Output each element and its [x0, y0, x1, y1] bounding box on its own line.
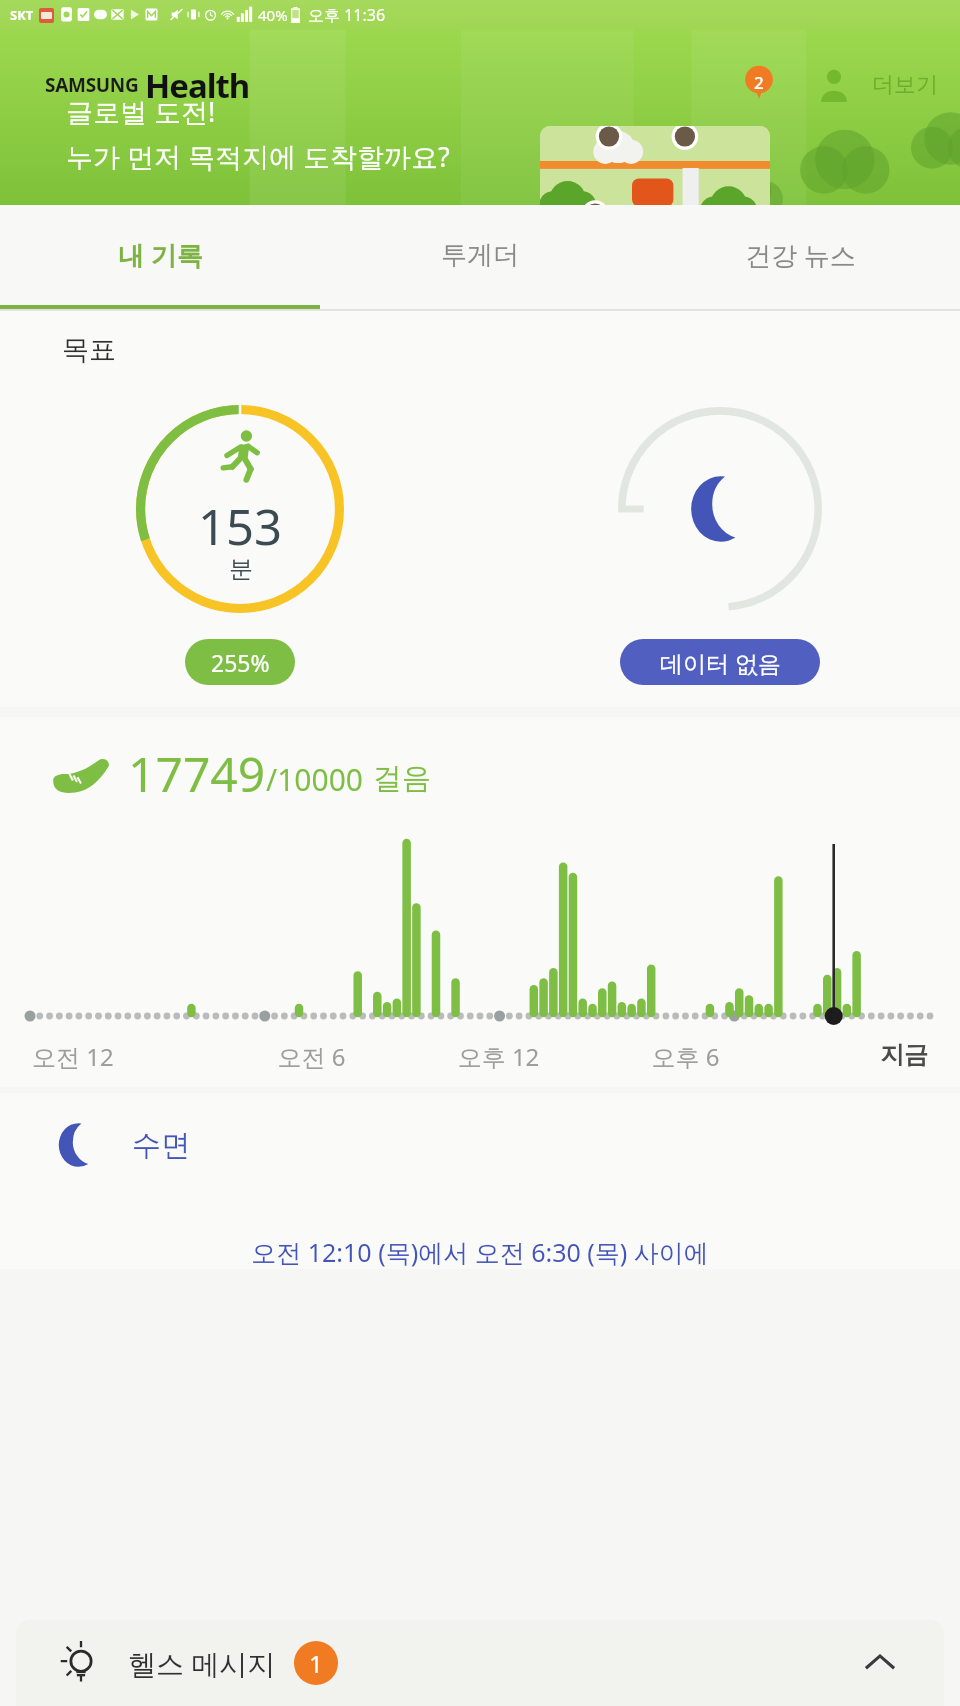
staticText: 헬스 메시지	[128, 1644, 276, 1682]
button[interactable]: 건강 뉴스	[640, 205, 960, 305]
button[interactable]: 17749	[52, 741, 960, 806]
staticText: 153	[198, 493, 283, 560]
staticText: 걸음	[373, 760, 431, 797]
staticText: 분	[229, 554, 253, 584]
staticText: 40%	[258, 5, 288, 25]
staticText: 목표	[62, 333, 116, 367]
staticText: SAMSUNG	[45, 72, 139, 98]
staticText: 17749	[128, 741, 266, 806]
staticText: SKT	[10, 6, 34, 24]
staticText: 글로벌 도전!	[66, 93, 216, 130]
button[interactable]: 알림	[736, 62, 782, 108]
staticText: 데이터 없음	[660, 647, 781, 678]
staticText: 255%	[211, 647, 270, 678]
staticText: Health	[145, 63, 250, 108]
staticText: 누가 먼저 목적지에 도착할까요?	[66, 138, 450, 175]
staticText: 오후 6	[592, 1040, 779, 1073]
button[interactable]: 투게더	[320, 205, 640, 305]
staticText: 오전 12:10 (목)에서 오전 6:30 (목) 사이에	[0, 1235, 960, 1269]
button[interactable]: 데이터 없음	[620, 639, 820, 685]
staticText: 더보기	[872, 71, 938, 99]
staticText: 오전 12	[32, 1040, 218, 1073]
button[interactable]: 153	[134, 403, 346, 615]
staticText: 1	[309, 1647, 323, 1680]
staticText: 지금	[779, 1040, 928, 1070]
staticText: 오후 12	[405, 1040, 592, 1073]
staticText: /10000	[266, 759, 363, 800]
button[interactable]: 수면	[0, 1119, 960, 1269]
staticText: 수면	[132, 1127, 190, 1164]
staticText: 건강 뉴스	[745, 237, 856, 273]
staticText: 오전 6	[218, 1040, 405, 1073]
staticText: 내 기록	[118, 237, 203, 273]
other: 펼치기	[858, 1641, 902, 1685]
staticText: 2	[754, 71, 764, 94]
button[interactable]	[614, 403, 826, 615]
button[interactable]: 내 기록	[0, 205, 320, 305]
staticText: 오후 11:36	[308, 4, 386, 26]
button[interactable]: 헬스 메시지	[16, 1620, 944, 1706]
button[interactable]: 더보기	[872, 71, 938, 99]
staticText: 투게더	[441, 239, 519, 272]
button[interactable]: 프로필	[812, 63, 856, 107]
button[interactable]: 255%	[185, 639, 295, 685]
